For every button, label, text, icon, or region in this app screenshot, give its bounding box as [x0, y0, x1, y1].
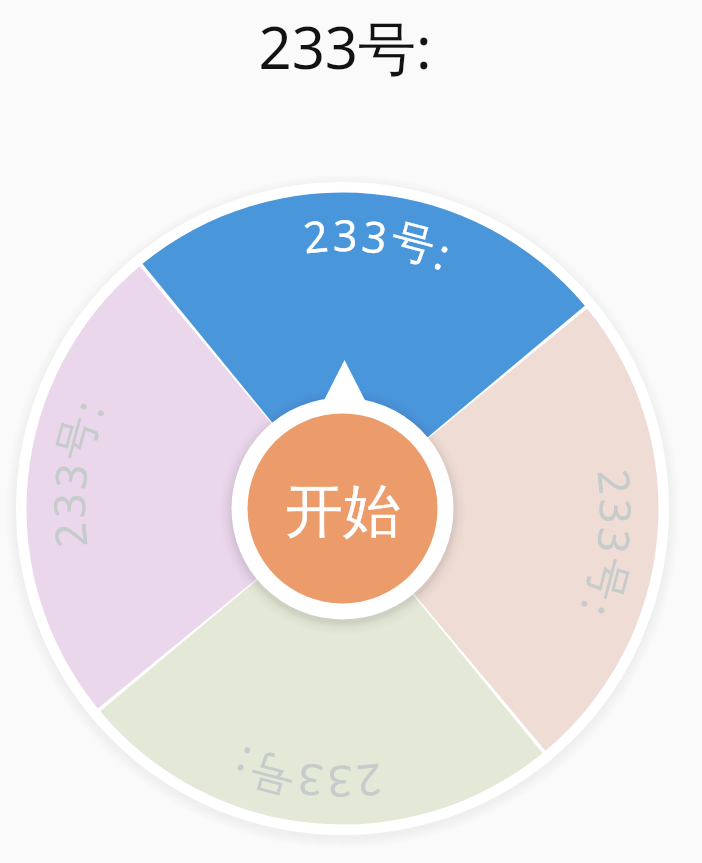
button[interactable]: 开始: [232, 398, 454, 620]
staticText: 233号:: [258, 7, 432, 86]
staticText: 开始: [285, 475, 401, 548]
button[interactable]: Prize wheel: [16, 182, 669, 835]
